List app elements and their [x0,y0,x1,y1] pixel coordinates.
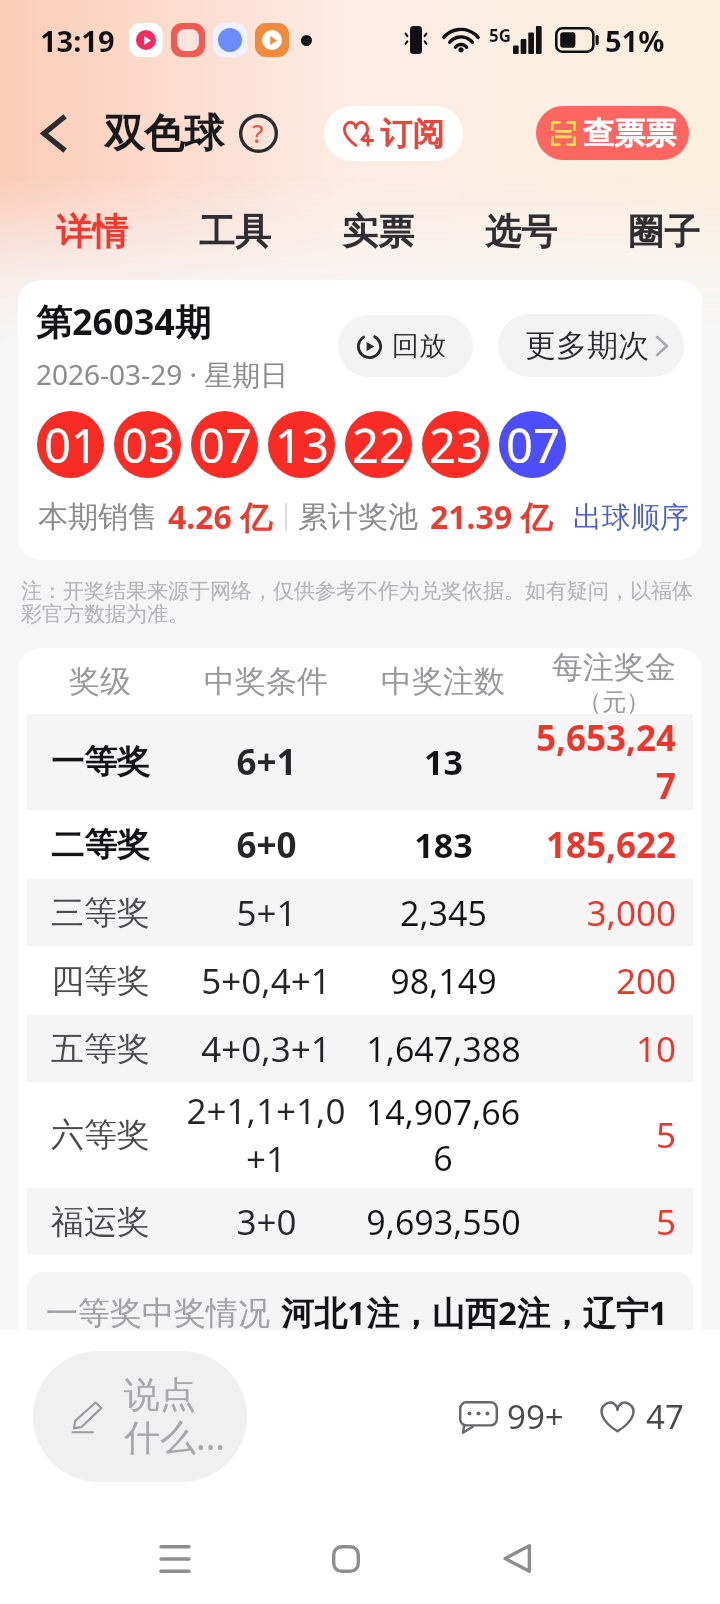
button[interactable]: 说点 什么... [33,1351,247,1482]
button[interactable]: 一等奖中奖情况 [27,1272,693,1359]
staticText: 07 [198,413,252,477]
staticText: 每注奖金 [552,648,676,687]
staticText: 一等奖中奖情况 [46,1293,270,1333]
staticText: （元） [578,687,650,714]
staticText: 详情 [56,209,128,254]
staticText: 三等奖 [51,892,150,934]
staticText: 14,907,666 [359,1089,527,1181]
staticText: 一等奖 [51,741,150,783]
button[interactable]: Home [296,1520,396,1597]
staticText: 3+0 [236,1198,297,1246]
button[interactable]: 一等奖 [27,714,693,810]
staticText: 河北1注，山西2注，辽宁1 [281,1290,668,1335]
button[interactable]: 工具 [199,186,342,276]
staticText: 2,345 [400,890,487,936]
staticText: 四等奖 [51,960,150,1002]
button[interactable]: 选号 [485,186,628,276]
staticText: ? [252,115,264,150]
staticText: 二等奖 [51,824,150,866]
staticText: 奖级 [69,662,131,701]
staticText: 13:19 [40,21,115,60]
staticText: 22 [352,413,406,477]
button[interactable]: 二等奖 [27,810,693,879]
button[interactable]: 实票 [342,186,485,276]
staticText: 说点 什么... [124,1372,225,1461]
staticText: 中奖条件 [204,662,328,701]
staticText: 6+0 [236,821,297,869]
staticText: 21.39 亿 [430,495,553,539]
staticText: 本期销售 [38,498,158,536]
staticText: 200 [527,957,676,1005]
staticText: 累计奖池 [298,498,418,536]
staticText: 98,149 [390,958,497,1004]
button[interactable]: 福运奖 [27,1188,693,1255]
button[interactable]: Back [26,106,80,160]
staticText: 3,000 [527,889,676,937]
staticText: 第26034期 [36,297,211,346]
button[interactable]: Comments [459,1394,564,1439]
staticText: 更多期次 [525,326,649,365]
staticText: 03 [121,413,175,477]
staticText: 51% [605,21,665,60]
staticText: 23 [429,413,483,477]
staticText: 5 [527,1198,676,1246]
staticText: 工具 [199,209,271,254]
staticText: 中奖注数 [381,662,505,701]
button[interactable]: 出球顺序 [573,499,689,536]
staticText: 出球顺序 [573,499,689,536]
button[interactable]: Help [236,111,280,155]
staticText: 4.26 亿 [168,495,273,539]
staticText: 5G [489,24,512,47]
button[interactable]: 圈子 [628,186,720,276]
staticText: 01 [44,413,98,477]
staticText: 注：开奖结果来源于网络，仅供参考不作为兑奖依据。如有疑问，以福体彩官方数据为准。 [21,578,711,627]
staticText: 6+1 [236,738,297,786]
staticText: 5+1 [236,889,297,937]
staticText: 5,653,247 [527,714,676,810]
staticText: 六等奖 [51,1114,150,1156]
staticText: 07 [506,413,560,477]
staticText: 47 [646,1394,684,1439]
staticText: 福运奖 [51,1201,150,1243]
button[interactable]: Recents [125,1520,225,1597]
button[interactable]: 四等奖 [27,946,693,1015]
button[interactable]: Like [598,1394,684,1439]
staticText: 双色球 [104,108,224,158]
button[interactable]: 订阅 [324,106,463,161]
staticText: 185,622 [527,821,676,869]
staticText: 五等奖 [51,1028,150,1070]
staticText: 10 [527,1025,676,1073]
staticText: 实票 [342,209,414,254]
button[interactable]: 三等奖 [27,879,693,946]
staticText: 99+ [507,1394,564,1439]
staticText: 2+1,1+1,0+1 [182,1087,350,1183]
staticText: 选号 [485,209,557,254]
button[interactable]: 五等奖 [27,1015,693,1082]
staticText: 9,693,550 [366,1199,521,1245]
staticText: 1,647,388 [366,1026,521,1072]
button[interactable]: 详情 [56,186,199,276]
staticText: 查票票 [583,114,676,153]
button[interactable]: 更多期次 [498,314,684,377]
staticText: 13 [275,413,329,477]
button[interactable]: Back [467,1520,567,1597]
staticText: 183 [414,822,473,868]
staticText: 5+0,4+1 [201,957,331,1005]
staticText: 2026-03-29 · 星期日 [36,355,289,393]
staticText: 5 [527,1111,676,1159]
button[interactable]: 查票票 [536,106,689,160]
staticText: 13 [424,739,463,785]
staticText: 回放 [392,329,446,363]
staticText: 订阅 [380,114,444,154]
button[interactable]: 回放 [338,315,473,377]
staticText: 4+0,3+1 [201,1025,331,1073]
staticText: 圈子 [628,209,700,254]
button[interactable]: 六等奖 [27,1082,693,1188]
